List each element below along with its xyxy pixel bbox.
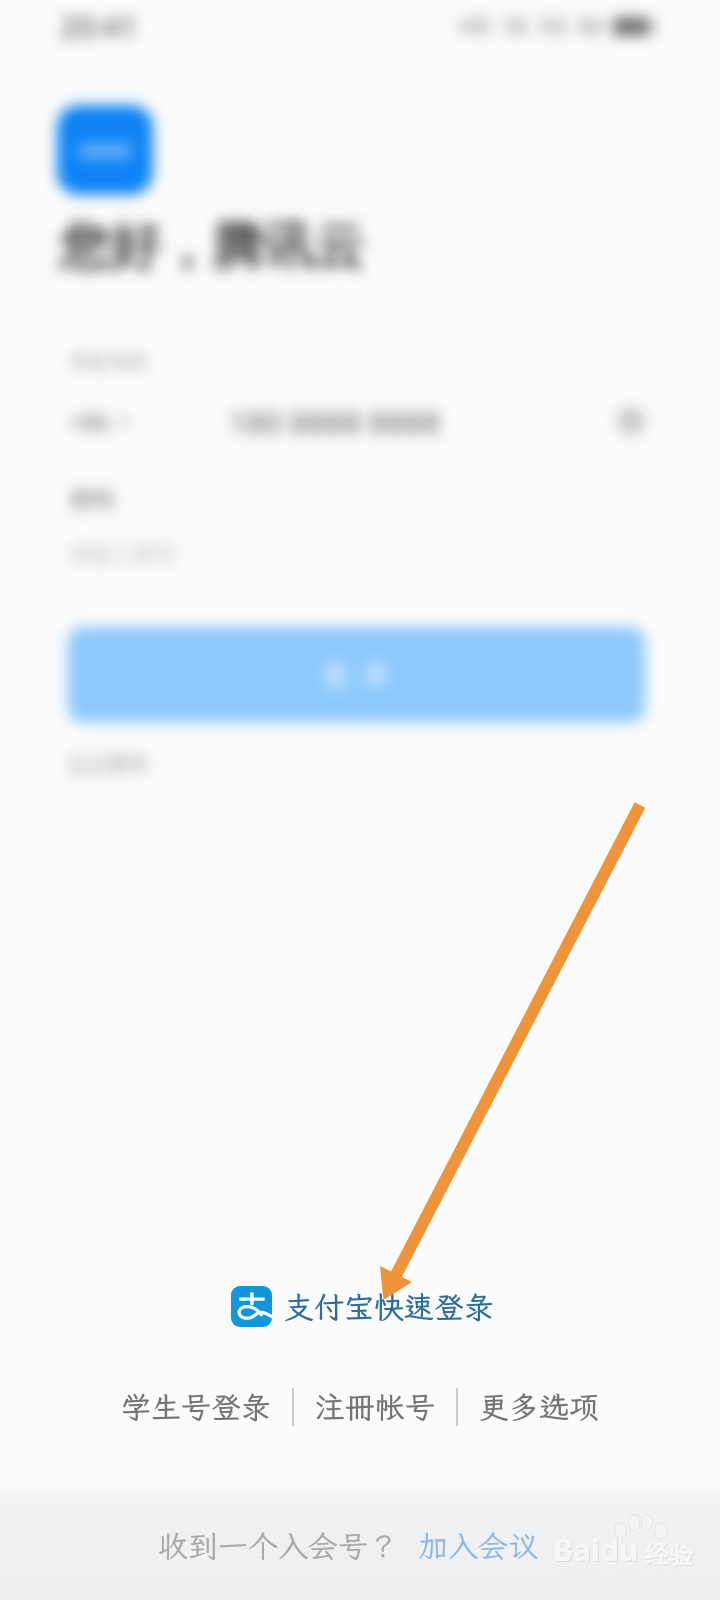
staticText: 56 (504, 12, 529, 41)
staticText: 更多选项 (479, 1387, 599, 1427)
staticText: jingyan.baidu.com (555, 1560, 685, 1580)
button[interactable]: 忘记密码 (68, 752, 148, 777)
button[interactable]: Clear (617, 407, 645, 435)
staticText: 84 (579, 12, 604, 41)
staticText: 注册帐号 (315, 1387, 435, 1427)
staticText: 手机号码 (70, 351, 146, 375)
staticText: 20:41 (60, 6, 137, 47)
button[interactable]: 注册帐号 (315, 1387, 435, 1427)
staticText: 密码 (70, 486, 114, 514)
staticText: 忘记密码 (68, 752, 148, 777)
staticText: 收到一个入会号？ (158, 1526, 398, 1566)
other: App icon (57, 105, 153, 195)
staticText: 学生号登录 (121, 1387, 271, 1427)
button[interactable]: 学生号登录 (121, 1387, 271, 1427)
staticText: 5G (540, 12, 568, 41)
staticText: Baidu (553, 1529, 639, 1570)
staticText: 请输入密码 (70, 541, 175, 567)
button[interactable]: 加入会议 (418, 1526, 538, 1566)
staticText: +86 (68, 405, 110, 438)
staticText: 经验 (645, 1540, 693, 1570)
staticText: 加入会议 (418, 1526, 538, 1566)
button[interactable]: Alipay (231, 1286, 494, 1327)
other: Alipay (231, 1286, 272, 1327)
staticText: HD (460, 12, 491, 41)
staticText: Baidu (554, 1530, 640, 1571)
staticText: 经验 (646, 1541, 694, 1571)
button[interactable]: 登 录 (68, 627, 645, 722)
button[interactable]: 更多选项 (479, 1387, 599, 1427)
staticText: 登 录 (322, 656, 391, 693)
staticText: 180 8888 8888 (229, 401, 441, 441)
staticText: 支付宝快速登录 (284, 1287, 494, 1327)
staticText: 您好，腾讯云 (59, 215, 365, 279)
